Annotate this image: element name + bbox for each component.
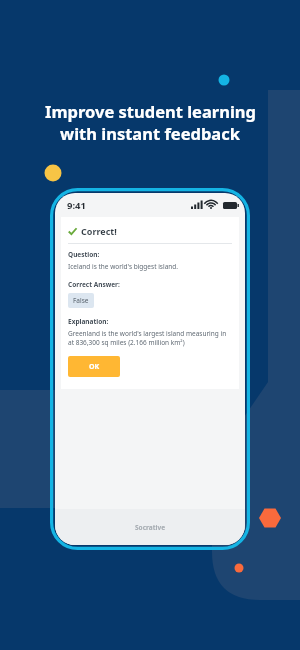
staticText: 9:41: [67, 199, 86, 212]
button[interactable]: OK: [68, 356, 120, 377]
staticText: OK: [89, 362, 100, 372]
staticText: Socrative: [135, 523, 166, 532]
staticText: with instant feedback: [60, 122, 240, 144]
staticText: Explanation:: [68, 317, 109, 326]
staticText: False: [73, 296, 89, 305]
staticText: Improve student learning: [45, 100, 256, 122]
staticText: Question:: [68, 250, 100, 259]
button[interactable]: False: [68, 293, 94, 308]
staticText: Correct Answer:: [68, 280, 120, 289]
staticText: Correct!: [81, 225, 117, 237]
staticText: Greenland is the world's largest island …: [68, 329, 232, 347]
staticText: Iceland is the world's biggest island.: [68, 262, 179, 271]
